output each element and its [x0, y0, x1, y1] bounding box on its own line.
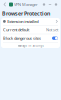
staticText: Not set [46, 27, 58, 32]
button[interactable]: Block dangerous sites [1, 34, 60, 42]
staticText: Block dangerous sites [3, 35, 41, 41]
button[interactable]: Extension installed [1, 17, 60, 25]
staticText: Browser Protection [2, 10, 50, 17]
staticText: VPN Manager [14, 2, 38, 7]
button[interactable]: More [53, 0, 59, 9]
button[interactable]: Current default [1, 26, 60, 34]
button[interactable]: Profile [41, 0, 47, 9]
staticText: Extension installed [7, 19, 38, 24]
staticText: Current default [3, 27, 29, 32]
staticText: Manage in Settings [17, 44, 43, 47]
button[interactable]: Minimize [47, 0, 53, 9]
button[interactable]: Back [2, 0, 8, 9]
